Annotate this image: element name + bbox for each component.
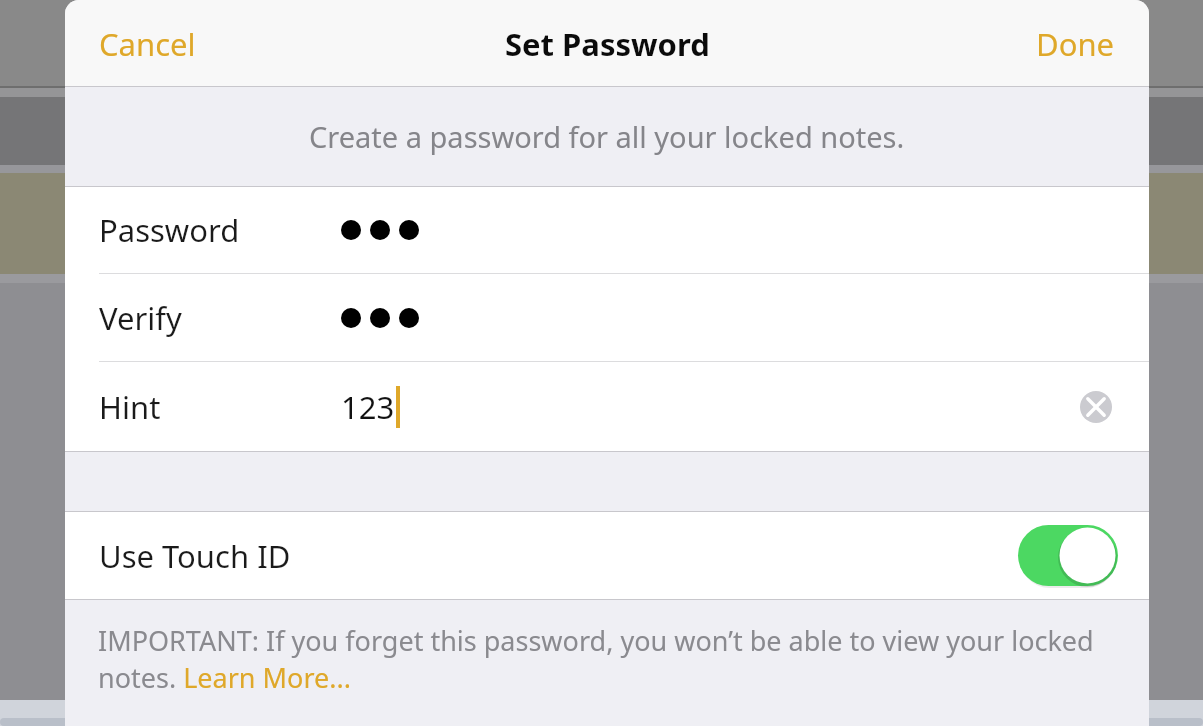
staticText: Verify	[99, 297, 182, 339]
staticText: Hint	[99, 386, 161, 428]
button[interactable]: Verify	[65, 274, 1149, 361]
staticText: IMPORTANT: If you forget this password, …	[98, 622, 1116, 696]
staticText: Password	[99, 209, 240, 251]
button[interactable]: Cancel	[79, 15, 216, 73]
button[interactable]: Use Touch ID toggle, on	[1018, 525, 1118, 586]
button[interactable]: Clear text	[1074, 385, 1118, 429]
button[interactable]: Hint	[65, 362, 1149, 451]
button[interactable]: Password	[65, 187, 1149, 273]
staticText: Cancel	[99, 23, 196, 65]
staticText: 123	[341, 386, 395, 428]
staticText: Create a password for all your locked no…	[309, 117, 905, 156]
staticText: Done	[1036, 23, 1115, 65]
button[interactable]: Done	[1016, 15, 1135, 73]
button[interactable]: Use Touch ID	[65, 512, 1149, 599]
staticText: Set Password	[505, 23, 710, 65]
staticText: Use Touch ID	[99, 535, 291, 577]
